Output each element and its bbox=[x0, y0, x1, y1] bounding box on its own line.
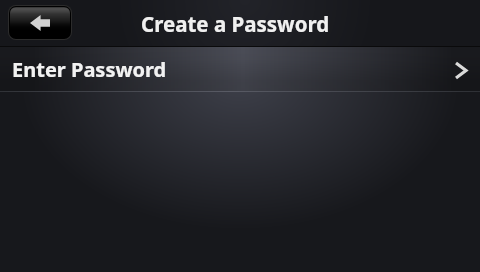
other: Open bbox=[456, 63, 466, 78]
staticText: Enter Password bbox=[12, 56, 167, 83]
button[interactable]: Back bbox=[10, 7, 70, 38]
button[interactable]: Enter Password bbox=[0, 47, 480, 92]
staticText: Create a Password bbox=[141, 10, 330, 38]
